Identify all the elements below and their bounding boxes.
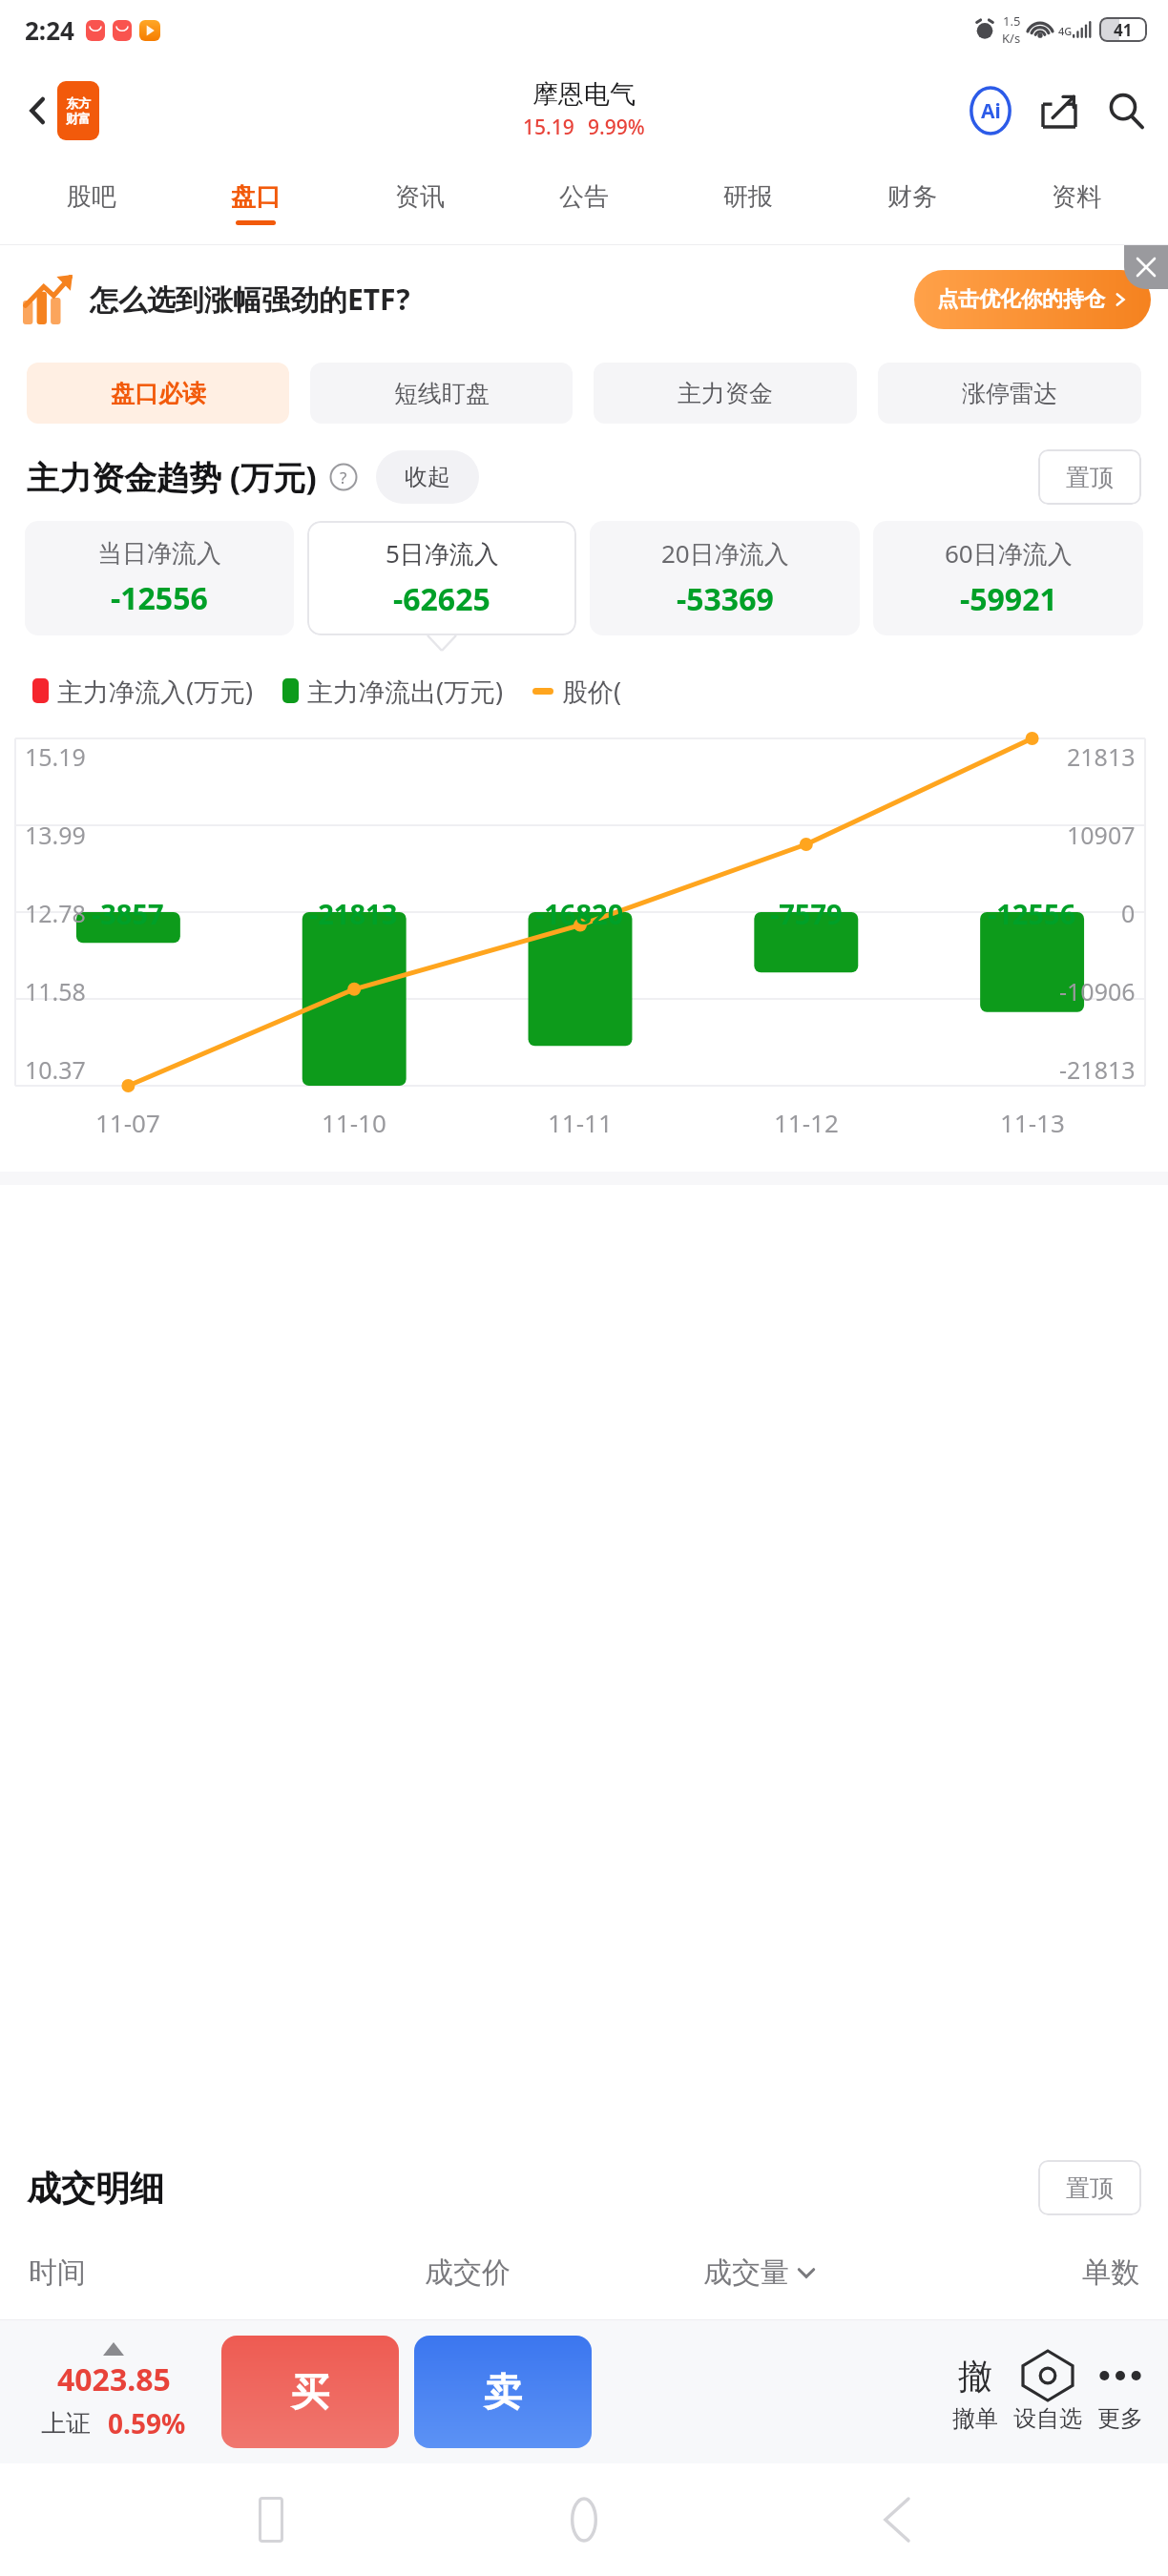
staticText: -10906 bbox=[1059, 975, 1136, 1008]
button[interactable]: 东方 bbox=[57, 81, 99, 140]
staticText: 短线盯盘 bbox=[394, 379, 490, 408]
staticText: 10.37 bbox=[25, 1053, 86, 1086]
staticText: 11-11 bbox=[548, 1106, 613, 1139]
button[interactable]: 盘口 bbox=[174, 162, 338, 244]
staticText: 60日净流入 bbox=[945, 536, 1073, 571]
button[interactable]: 短线盯盘 bbox=[310, 363, 573, 424]
staticText: 涨停雷达 bbox=[962, 379, 1057, 408]
staticText: 5日净流入 bbox=[386, 536, 499, 571]
staticText: 主力净流入(万元) bbox=[57, 674, 254, 709]
button[interactable]: Home bbox=[541, 2477, 627, 2563]
button[interactable]: 研报 bbox=[666, 162, 830, 244]
staticText: 成交明细 bbox=[27, 2167, 164, 2210]
staticText: 10907 bbox=[1067, 819, 1136, 851]
staticText: 成交量 bbox=[703, 2254, 789, 2291]
button[interactable]: 4023.85 bbox=[23, 2342, 204, 2441]
staticText: 21813 bbox=[1067, 740, 1136, 773]
staticText: 主力资金 bbox=[678, 379, 773, 408]
staticText: 资讯 bbox=[395, 181, 445, 213]
staticText: ? bbox=[340, 467, 347, 488]
staticText: 盘口必读 bbox=[111, 379, 206, 408]
button[interactable]: 收起 bbox=[376, 450, 479, 504]
button[interactable]: 财务 bbox=[830, 162, 994, 244]
staticText: 置顶 bbox=[1066, 463, 1114, 492]
staticText: 4G bbox=[1058, 24, 1073, 38]
staticText: -59921 bbox=[960, 578, 1057, 620]
staticText: 撤 bbox=[958, 2355, 992, 2398]
button[interactable]: Search bbox=[1099, 84, 1153, 137]
staticText: -3857 bbox=[92, 895, 164, 932]
staticText: 上证 bbox=[41, 2408, 91, 2440]
button[interactable]: 撤 bbox=[950, 2351, 1000, 2433]
button[interactable]: 涨停雷达 bbox=[878, 363, 1141, 424]
staticText: 财务 bbox=[887, 181, 937, 213]
button[interactable]: Back bbox=[11, 84, 65, 137]
staticText: 15.19 bbox=[25, 740, 86, 773]
button[interactable]: 资料 bbox=[994, 162, 1158, 244]
button[interactable]: 设自选 bbox=[1013, 2351, 1082, 2433]
staticText: 11-13 bbox=[1000, 1106, 1065, 1139]
staticText: 0 bbox=[1121, 897, 1136, 929]
button[interactable]: 置顶 bbox=[1038, 449, 1141, 505]
staticText: K/s bbox=[1002, 30, 1021, 47]
button[interactable]: 点击优化你的持仓 bbox=[914, 270, 1151, 329]
staticText: 单数 bbox=[1082, 2254, 1139, 2291]
staticText: -7579 bbox=[770, 895, 843, 932]
button[interactable]: AI assistant bbox=[964, 84, 1017, 137]
button[interactable]: 成交量 bbox=[614, 2254, 906, 2291]
staticText: 股价( bbox=[562, 674, 622, 709]
staticText: 财富 bbox=[66, 111, 91, 126]
staticText: 11.58 bbox=[25, 975, 86, 1008]
button[interactable]: 60日净流入 bbox=[873, 521, 1143, 635]
staticText: -21813 bbox=[309, 895, 398, 932]
button[interactable]: Recents bbox=[228, 2477, 314, 2563]
button[interactable]: 股吧 bbox=[10, 162, 174, 244]
button[interactable]: Help bbox=[326, 460, 361, 494]
staticText: 15.19 bbox=[523, 114, 574, 141]
button[interactable]: 盘口必读 bbox=[27, 363, 289, 424]
staticText: -21813 bbox=[1059, 1053, 1136, 1086]
staticText: -62625 bbox=[393, 578, 490, 620]
button[interactable]: Close ad bbox=[1124, 245, 1168, 289]
button[interactable]: 公告 bbox=[502, 162, 666, 244]
staticText: 13.99 bbox=[25, 819, 86, 851]
staticText: 股吧 bbox=[67, 181, 116, 213]
staticText: -12556 bbox=[111, 577, 208, 619]
button[interactable]: 买 bbox=[221, 2336, 399, 2448]
staticText: 盘口 bbox=[231, 181, 281, 213]
staticText: -12556 bbox=[988, 895, 1076, 932]
button[interactable]: 主力资金 bbox=[594, 363, 857, 424]
staticText: 1.5 bbox=[1003, 12, 1021, 30]
staticText: 4023.85 bbox=[57, 2358, 171, 2400]
button[interactable]: 更多 bbox=[1095, 2351, 1145, 2433]
staticText: 2:24 bbox=[25, 13, 74, 47]
button[interactable]: 卖 bbox=[414, 2336, 592, 2448]
staticText: 置顶 bbox=[1066, 2173, 1114, 2203]
staticText: 公告 bbox=[559, 181, 609, 213]
staticText: 怎么选到涨幅强劲的ETF? bbox=[90, 280, 410, 319]
button[interactable]: Back bbox=[855, 2477, 941, 2563]
button[interactable]: 置顶 bbox=[1038, 2160, 1141, 2215]
button[interactable]: Share bbox=[1032, 84, 1086, 137]
staticText: 11-12 bbox=[774, 1106, 839, 1139]
staticText: -16820 bbox=[535, 895, 624, 932]
staticText: 12.78 bbox=[25, 897, 86, 929]
button[interactable]: 资讯 bbox=[338, 162, 502, 244]
staticText: 20日净流入 bbox=[661, 536, 789, 571]
button[interactable]: 5日净流入 bbox=[307, 521, 576, 635]
staticText: 收起 bbox=[405, 463, 450, 491]
staticText: 摩恩电气 bbox=[532, 78, 636, 111]
staticText: 时间 bbox=[29, 2254, 86, 2291]
staticText: 更多 bbox=[1097, 2404, 1143, 2433]
staticText: 研报 bbox=[723, 181, 773, 213]
staticText: 撤单 bbox=[952, 2404, 998, 2433]
staticText: 买 bbox=[291, 2368, 329, 2416]
staticText: -53369 bbox=[677, 578, 774, 620]
button[interactable]: 当日净流入 bbox=[25, 521, 294, 635]
staticText: 11-10 bbox=[322, 1106, 386, 1139]
staticText: 设自选 bbox=[1013, 2404, 1082, 2433]
staticText: Ai bbox=[981, 97, 1001, 125]
button[interactable]: 20日净流入 bbox=[590, 521, 860, 635]
staticText: 11-07 bbox=[95, 1106, 160, 1139]
staticText: 0.59% bbox=[108, 2405, 186, 2441]
